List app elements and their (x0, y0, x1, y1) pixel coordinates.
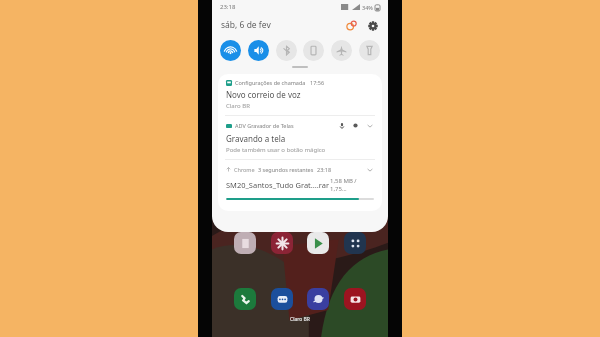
button[interactable]: App (307, 288, 329, 310)
staticText: ADV Gravador de Telas (235, 122, 294, 129)
staticText: Gravando a tela (226, 133, 286, 144)
staticText: 17:56 (310, 79, 325, 86)
button[interactable]: Modo avião (331, 40, 352, 61)
staticText: SM20_Santos_Tudo Grat....rar (226, 180, 330, 190)
staticText: Configurações de chamada (235, 79, 306, 86)
button[interactable]: Expandir (365, 121, 374, 130)
button[interactable]: App (234, 288, 256, 310)
button[interactable]: Configurações de chamada (218, 74, 382, 115)
button[interactable]: Configurações (366, 19, 379, 32)
staticText: 23:18 (317, 166, 332, 173)
button[interactable]: App (344, 288, 366, 310)
button[interactable]: Chrome (218, 160, 382, 205)
button[interactable]: Wi-Fi (220, 40, 241, 61)
button[interactable]: App (271, 288, 293, 310)
staticText: 34% (362, 4, 373, 11)
staticText: 23:18 (220, 3, 236, 11)
staticText: sáb, 6 de fev (221, 19, 271, 31)
staticText: 3 segundos restantes (258, 166, 314, 173)
button[interactable]: Bluetooth (276, 40, 297, 61)
button[interactable]: ADV Gravador de Telas (218, 116, 382, 159)
staticText: Novo correio de voz (226, 89, 301, 100)
button[interactable]: App (344, 232, 366, 254)
button[interactable]: Expandir (365, 165, 374, 174)
button[interactable]: Som (248, 40, 269, 61)
button[interactable]: Lanterna (359, 40, 380, 61)
staticText: 1,58 MB / 1,75... (330, 177, 374, 193)
button[interactable]: Parar (351, 121, 360, 130)
staticText: Chrome (234, 166, 255, 173)
button[interactable]: Usuário (345, 19, 358, 32)
button[interactable]: Rotação (303, 40, 324, 61)
button[interactable]: App (234, 232, 256, 254)
staticText: Claro BR (290, 316, 310, 323)
staticText: Claro BR (226, 102, 250, 110)
button[interactable]: App (271, 232, 293, 254)
button[interactable]: Microfone (337, 121, 346, 130)
button[interactable]: App (307, 232, 329, 254)
staticText: Pode também usar o botão mágico (226, 146, 326, 154)
